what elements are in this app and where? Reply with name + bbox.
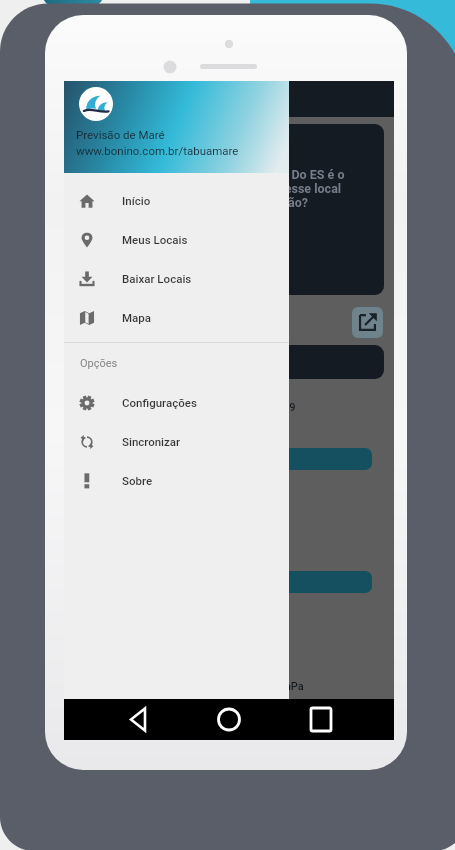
button[interactable]: Sobre (64, 461, 289, 500)
staticText: Previsão de Maré (76, 128, 165, 141)
staticText: Máx 1.9 (256, 401, 296, 414)
button[interactable]: Meus Locais (64, 220, 289, 259)
staticText: Mapa (122, 311, 151, 324)
button[interactable]: Início (64, 181, 289, 220)
button[interactable]: Configurações (64, 383, 289, 422)
staticText: www.bonino.com.br/tabuamare (76, 144, 239, 157)
button[interactable]: Abrir em nova janela (352, 307, 383, 338)
staticText: e assim ter as marés na palma da mão? (86, 195, 309, 209)
staticText: Sobre (122, 474, 153, 487)
button[interactable]: Baixar Locais (64, 259, 289, 298)
staticText: Configurações (122, 396, 197, 409)
staticText: Sincronizar (122, 435, 181, 448)
staticText: nosso trabalho. Que tal ter e salvar ess… (86, 181, 342, 195)
staticText: Meus Locais (122, 233, 188, 246)
button[interactable]: Mapa (64, 298, 289, 337)
staticText: Baixar Locais (122, 272, 192, 285)
staticText: Prever as Marés de Todos os Portos Do ES… (86, 167, 345, 181)
staticText: Opções (80, 357, 118, 370)
staticText: Início (122, 194, 151, 207)
button[interactable]: Sincronizar (64, 422, 289, 461)
staticText: 1012 hPa (257, 680, 304, 693)
